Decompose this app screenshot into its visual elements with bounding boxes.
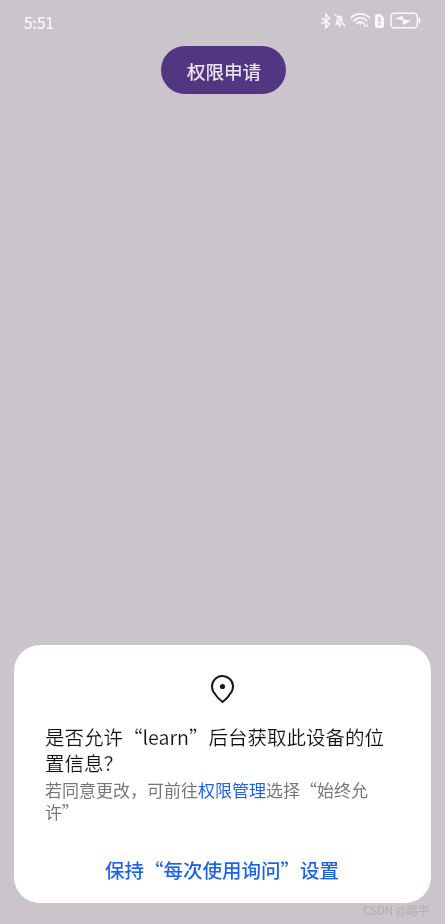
staticText: CSDN @路宇 <box>363 902 430 919</box>
button[interactable]: 权限申请 <box>161 46 286 94</box>
staticText: 保持“每次使用询问”设置 <box>105 855 340 883</box>
other: Bluetooth <box>321 14 330 28</box>
staticText: 权限申请 <box>187 58 262 85</box>
other: Wi-Fi <box>351 13 370 28</box>
button[interactable]: 保持“每次使用询问”设置 <box>14 841 431 897</box>
other: Silent mode <box>334 14 345 28</box>
other: Battery charging <box>391 13 421 28</box>
staticText: 5:51 <box>24 11 55 33</box>
staticText: 若同意更改，可前往权限管理选择“始终允许” <box>45 777 375 824</box>
other: SIM alert <box>375 14 384 28</box>
staticText: 是否允许“learn”后台获取此设备的位置信息？ <box>45 722 393 777</box>
